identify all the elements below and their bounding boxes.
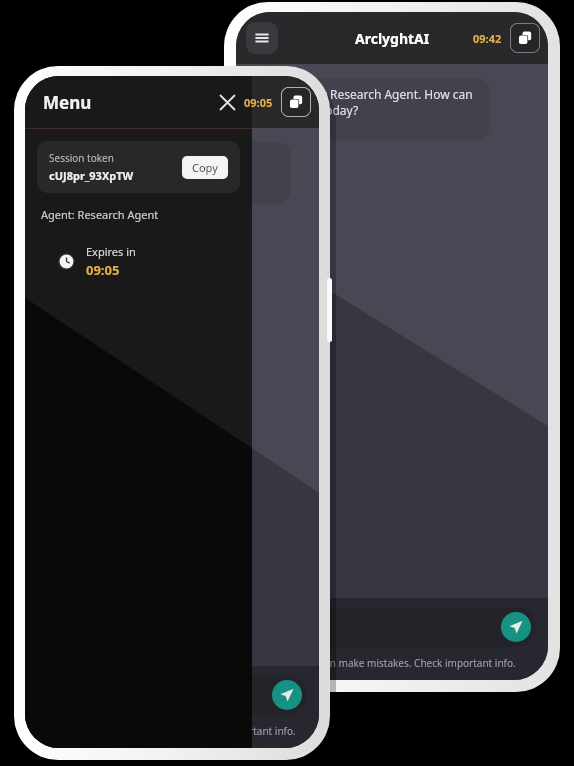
staticText: 09:05 [244, 95, 273, 110]
button[interactable]: Close menu [212, 87, 242, 117]
staticText: cUJ8pr_93XpTW [49, 168, 134, 183]
button[interactable]: Message [37, 675, 307, 715]
staticText: Expires in [86, 244, 136, 259]
button[interactable]: Copy session token [510, 23, 540, 53]
button[interactable]: Open menu [246, 22, 278, 54]
staticText: Agent: Research Agent [41, 207, 159, 222]
staticText: ArclyghtAI can make mistakes. Check impo… [25, 724, 319, 738]
staticText: 09:42 [473, 31, 502, 46]
button[interactable]: Send message [272, 680, 302, 710]
button[interactable]: Message [248, 607, 536, 647]
staticText: Menu [43, 91, 92, 114]
button[interactable]: Session token [37, 141, 240, 193]
staticText: 09:05 [86, 261, 120, 279]
staticText: ArclyghtAI can make mistakes. Check impo… [236, 656, 548, 670]
staticText: ArclyghtAI [355, 29, 430, 48]
button[interactable]: Copy [182, 156, 228, 179]
staticText: Hi, I'm your Research Agent. How can I h… [262, 86, 478, 118]
staticText: Session token [49, 151, 114, 165]
staticText: Copy [192, 160, 218, 175]
button[interactable]: Copy session token [281, 87, 311, 117]
button[interactable]: Send message [501, 612, 531, 642]
